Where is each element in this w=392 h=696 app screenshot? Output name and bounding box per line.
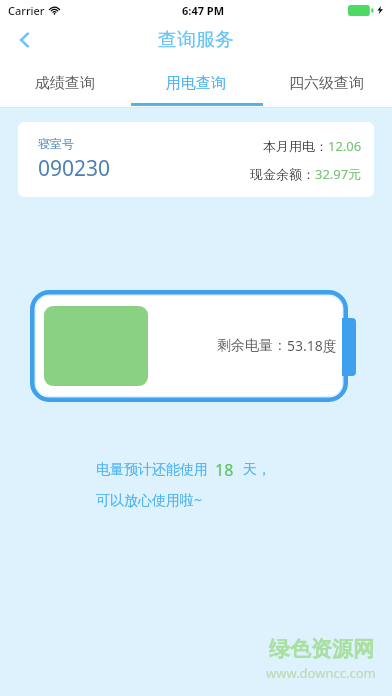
staticText: 可以放心使用啦~ [96,490,203,509]
button[interactable]: 用电查询 [130,60,261,106]
staticText: 绿色资源网 [269,636,374,662]
staticText: 寝室号 [38,136,74,151]
staticText: 090230 [38,154,111,183]
staticText: 电量预计还能使用 [96,461,208,479]
button[interactable]: 四六级查询 [261,60,392,106]
staticText: 成绩查询 [35,74,95,93]
staticText: 本月用电： [263,138,328,154]
staticText: 6:47 PM [182,3,225,18]
staticText: 12.06 [328,137,362,155]
button[interactable]: 成绩查询 [0,60,130,106]
staticText: www.downcc.com [266,664,376,682]
button[interactable]: 寝室号 [18,122,374,197]
staticText: 天， [243,461,271,479]
staticText: 查询服务 [158,28,234,52]
staticText: 四六级查询 [289,74,364,93]
staticText: 32.97元 [315,165,362,183]
staticText: Carrier [8,3,45,18]
staticText: 现金余额： [250,166,315,182]
staticText: 18 [215,459,234,481]
button[interactable]: Back [0,20,50,60]
staticText: 剩余电量： [217,337,287,355]
staticText: 53.18度 [287,336,337,355]
staticText: 用电查询 [166,74,226,93]
